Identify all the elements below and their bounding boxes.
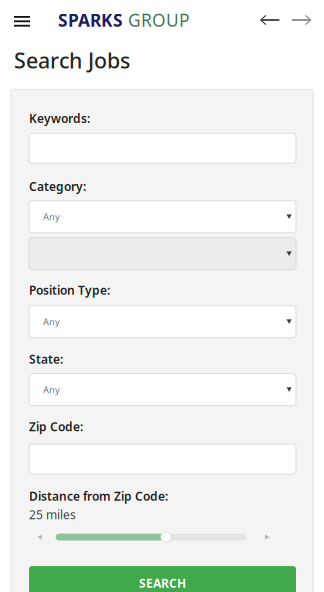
staticText: Any: [43, 383, 60, 396]
button[interactable]: SEARCH: [29, 566, 296, 592]
button[interactable]: Forward: [292, 0, 324, 40]
staticText: Zip Code:: [29, 419, 83, 434]
button[interactable]: Select: [29, 238, 296, 270]
staticText: GROUP: [128, 8, 189, 31]
staticText: Distance from Zip Code:: [29, 488, 168, 504]
staticText: Any: [43, 315, 60, 328]
staticText: State:: [29, 351, 63, 367]
button[interactable]: Any: [29, 201, 296, 233]
staticText: Position Type:: [29, 282, 110, 298]
button[interactable]: Any: [29, 306, 296, 338]
staticText: Keywords:: [29, 110, 90, 126]
staticText: SEARCH: [139, 575, 186, 591]
staticText: Search Jobs: [14, 46, 130, 74]
button[interactable]: Menu: [0, 0, 40, 40]
button[interactable]: Text field: [29, 444, 296, 474]
button[interactable]: Any: [29, 374, 296, 406]
staticText: 25 miles: [29, 507, 76, 522]
button[interactable]: Back: [254, 0, 292, 40]
button[interactable]: Increase distance: [257, 530, 278, 544]
button[interactable]: Decrease distance: [29, 530, 50, 544]
staticText: SPARKS: [58, 8, 123, 31]
button[interactable]: Text field: [29, 133, 296, 163]
staticText: Category:: [29, 178, 86, 194]
button[interactable]: Sparks Group home: [40, 0, 189, 40]
staticText: Any: [43, 210, 60, 223]
